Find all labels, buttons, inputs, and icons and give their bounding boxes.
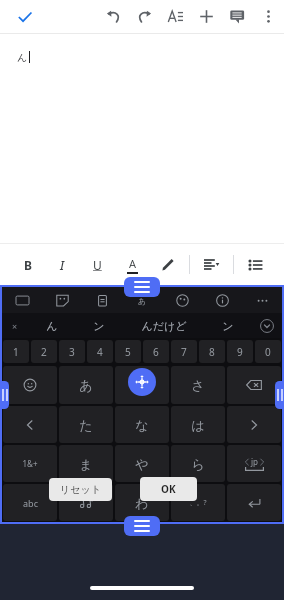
button[interactable]: んだけど	[123, 313, 204, 338]
button[interactable]: た	[59, 406, 113, 443]
button[interactable]: や	[115, 445, 169, 482]
button[interactable]: 4	[87, 340, 113, 363]
button[interactable]: ま	[59, 445, 113, 482]
staticText: I	[60, 257, 65, 273]
staticText: 0	[265, 345, 271, 359]
button[interactable]: Stickers	[42, 287, 82, 313]
button[interactable]: Move keyboard	[128, 368, 156, 396]
button[interactable]: わ	[115, 484, 169, 521]
button[interactable]: Italic	[45, 244, 80, 285]
button[interactable]: 2	[31, 340, 57, 363]
staticText: 3	[69, 345, 75, 359]
button[interactable]: Underline	[80, 244, 115, 285]
button[interactable]: Settings info	[202, 287, 242, 313]
staticText: jp	[251, 456, 258, 467]
button[interactable]: Translate	[122, 287, 162, 313]
button[interactable]: Redo	[129, 0, 160, 33]
staticText: リセット	[60, 483, 101, 496]
button[interactable]: Undo	[98, 0, 129, 33]
button[interactable]: Close suggestions	[2, 313, 28, 338]
staticText: 4	[97, 345, 103, 359]
button[interactable]: Done	[10, 2, 40, 32]
button[interactable]: 1	[3, 340, 29, 363]
button[interactable]: 9	[227, 340, 253, 363]
button[interactable]: Text color	[115, 244, 150, 285]
button[interactable]: あ	[59, 366, 113, 404]
staticText: 、。?	[189, 498, 207, 508]
button[interactable]: 6	[143, 340, 169, 363]
button[interactable]: 、。?	[171, 484, 225, 521]
staticText: 6	[153, 345, 159, 359]
button[interactable]: 1&+	[3, 445, 57, 482]
staticText: B	[24, 257, 32, 273]
staticText: 8	[209, 345, 215, 359]
button[interactable]: Bold	[10, 244, 45, 285]
button[interactable]: Backspace	[227, 366, 281, 404]
staticText: ん	[17, 51, 28, 64]
button[interactable]: GIF	[2, 287, 42, 313]
button[interactable]: Drag handle	[124, 516, 160, 536]
button[interactable]: Highlight	[150, 244, 185, 285]
button[interactable]: Cursor right	[227, 406, 281, 443]
button[interactable]: Resize left	[0, 381, 9, 409]
staticText: ×	[12, 320, 18, 332]
staticText: あ	[79, 377, 93, 393]
button[interactable]: Insert	[191, 0, 222, 33]
button[interactable]: Small kana	[59, 484, 113, 521]
staticText: 1	[13, 345, 19, 359]
button[interactable]: Expand suggestions	[252, 313, 282, 338]
staticText: OK	[161, 482, 176, 496]
button[interactable]: さ	[171, 366, 225, 404]
button[interactable]: 5	[115, 340, 141, 363]
button[interactable]: ン	[75, 313, 123, 338]
staticText: abc	[23, 497, 38, 509]
button[interactable]: Clipboard	[82, 287, 122, 313]
button[interactable]: Paragraph alignment	[194, 244, 229, 285]
staticText: な	[135, 417, 149, 433]
staticText: ら	[191, 456, 205, 472]
button[interactable]: ら	[171, 445, 225, 482]
button[interactable]: な	[115, 406, 169, 443]
staticText: や	[135, 456, 149, 472]
staticText: た	[79, 417, 93, 433]
staticText: は	[191, 417, 205, 433]
button[interactable]: ン	[204, 313, 252, 338]
button[interactable]: More options	[253, 0, 284, 33]
button[interactable]: Drag handle	[124, 277, 160, 297]
button[interactable]: Enter	[227, 484, 281, 521]
staticText: ま	[79, 456, 93, 472]
staticText: あ	[138, 296, 147, 306]
button[interactable]: 8	[199, 340, 225, 363]
button[interactable]: Resize right	[275, 381, 284, 409]
staticText: ン	[93, 319, 105, 333]
staticText: 2	[41, 345, 47, 359]
button[interactable]: Space	[227, 445, 281, 482]
staticText: 1&+	[22, 458, 38, 469]
button[interactable]: OK	[140, 477, 197, 501]
staticText: さ	[191, 377, 205, 393]
staticText: A	[129, 256, 137, 271]
button[interactable]	[115, 366, 169, 404]
button[interactable]: リセット	[49, 478, 112, 501]
button[interactable]: Themes	[162, 287, 202, 313]
staticText: ん	[46, 319, 58, 333]
staticText: ン	[222, 319, 234, 333]
button[interactable]: は	[171, 406, 225, 443]
button[interactable]: ん	[28, 313, 75, 338]
staticText: んだけど	[141, 319, 187, 333]
staticText: U	[93, 257, 102, 273]
button[interactable]: Text formatting	[160, 0, 191, 33]
button[interactable]: Bulleted list	[238, 244, 273, 285]
staticText: 5	[125, 345, 131, 359]
staticText: 9	[237, 345, 243, 359]
staticText: 7	[181, 345, 187, 359]
button[interactable]: More	[242, 287, 282, 313]
button[interactable]: 3	[59, 340, 85, 363]
button[interactable]: abc	[3, 484, 57, 521]
button[interactable]: Cursor left	[3, 406, 57, 443]
button[interactable]	[3, 366, 57, 404]
button[interactable]: 7	[171, 340, 197, 363]
staticText: わ	[135, 495, 149, 511]
button[interactable]: 0	[255, 340, 281, 363]
button[interactable]: Comments	[222, 0, 253, 33]
